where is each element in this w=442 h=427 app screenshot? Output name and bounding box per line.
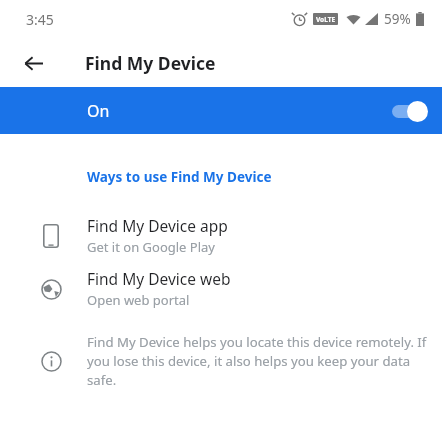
staticText: VoLTE [316, 15, 336, 24]
staticText: Open web portal [87, 291, 190, 309]
staticText: Find My Device helps you locate this dev… [87, 333, 428, 389]
staticText: On [87, 100, 388, 122]
staticText: 3:45 [26, 10, 54, 29]
staticText: Find My Device [85, 51, 216, 75]
button[interactable]: Back [14, 44, 52, 82]
staticText: Find My Device web [87, 268, 231, 289]
staticText: Find My Device app [87, 215, 228, 236]
staticText: 59% [384, 10, 411, 28]
button[interactable]: Find My Device web [0, 262, 442, 315]
staticText: Ways to use Find My Device [87, 168, 272, 186]
button[interactable]: Find My Device app [0, 209, 442, 262]
staticText: Get it on Google Play [87, 238, 215, 256]
button[interactable]: On [0, 87, 442, 134]
